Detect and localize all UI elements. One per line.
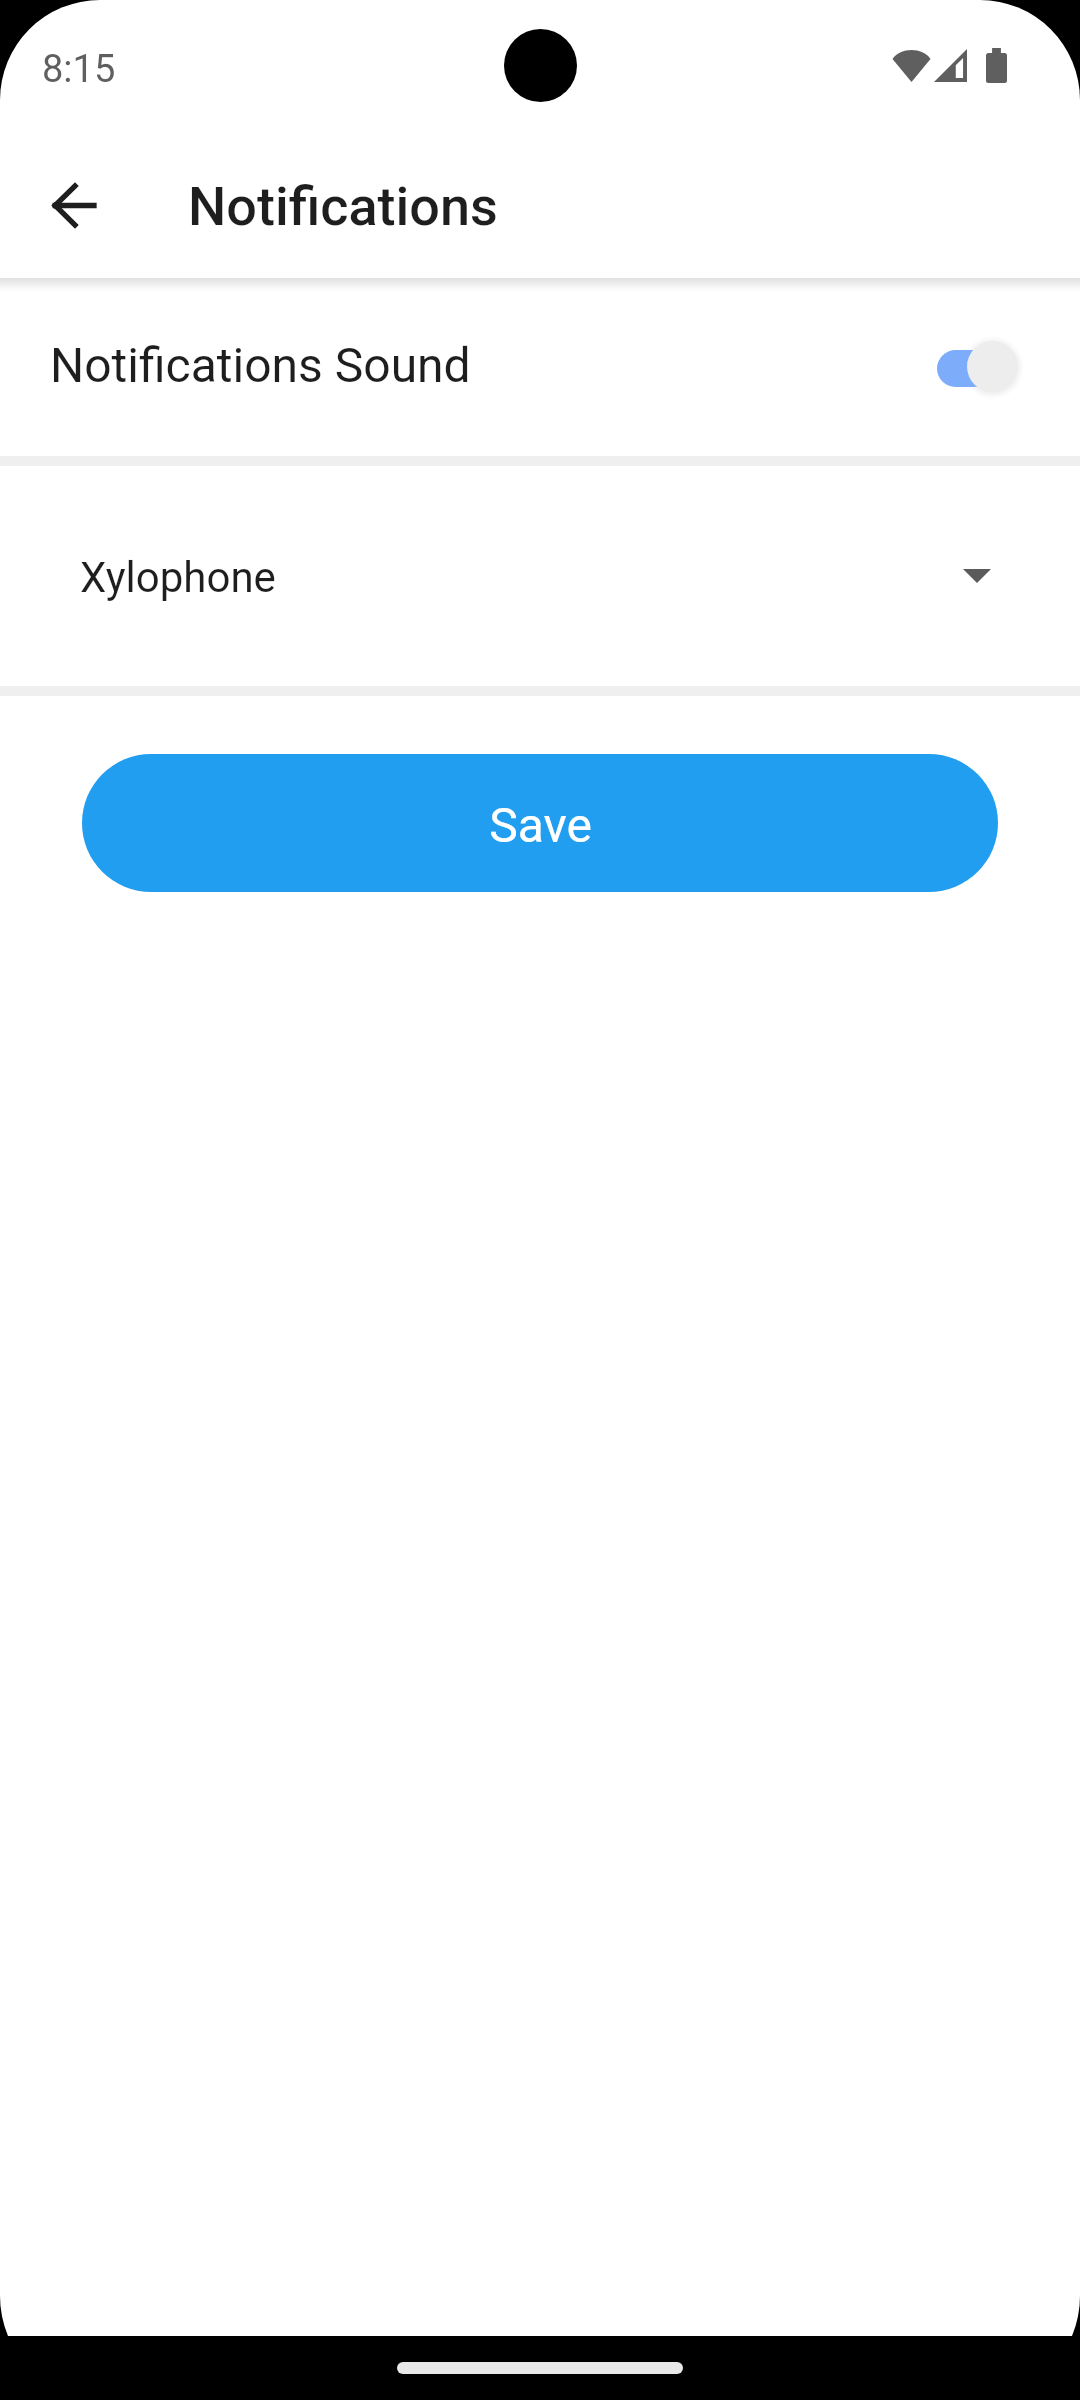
button[interactable]: Save <box>82 754 998 892</box>
staticText: Save <box>489 797 592 853</box>
staticText: Notifications <box>188 175 498 238</box>
button[interactable]: Xylophone <box>0 466 1080 686</box>
button[interactable]: Notifications Sound <box>0 284 1080 456</box>
button[interactable]: Back <box>26 157 122 253</box>
staticText: 8:15 <box>42 47 116 92</box>
staticText: Notifications Sound <box>50 337 471 393</box>
staticText: Xylophone <box>80 553 276 602</box>
